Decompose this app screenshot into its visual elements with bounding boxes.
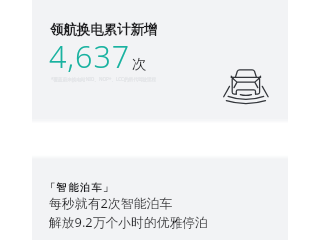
staticText: 次 — [132, 55, 147, 73]
staticText: 每秒就有2次智能泊车 — [49, 194, 173, 212]
staticText: 领航换电累计新增 — [50, 21, 158, 38]
staticText: 「智能泊车」 — [45, 181, 115, 194]
staticText: 解放9.2万个小时的优雅停泊 — [49, 213, 208, 230]
staticText: *覆盖蔚来换电站NIO、NOP+、LCC的所代驾驶里程 — [51, 76, 157, 82]
staticText: 4,637 — [49, 35, 131, 77]
